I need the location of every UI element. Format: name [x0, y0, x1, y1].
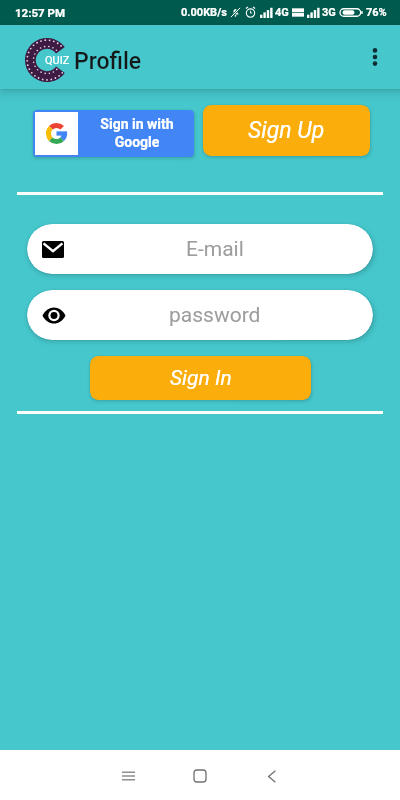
button[interactable]: Sign Up	[203, 105, 370, 156]
staticText: Sign In	[170, 366, 232, 391]
button[interactable]: More options	[355, 37, 395, 77]
staticText: Sign in with Google	[80, 116, 194, 151]
staticText: 3G	[322, 6, 336, 19]
button[interactable]: password	[27, 290, 373, 340]
staticText: E-mail	[186, 237, 244, 262]
staticText: Sign Up	[248, 117, 325, 144]
staticText: password	[169, 303, 261, 328]
staticText: QUIZ	[45, 54, 70, 67]
button[interactable]: Back	[252, 756, 292, 796]
staticText: Profile	[74, 48, 142, 75]
staticText: 12:57 PM	[15, 6, 65, 19]
button[interactable]: Recents	[108, 756, 148, 796]
staticText: 76%	[366, 6, 387, 19]
button[interactable]: Home	[180, 756, 220, 796]
button[interactable]: Sign in with Google	[33, 110, 194, 157]
staticText: 4G	[275, 6, 289, 19]
button[interactable]: E-mail	[27, 224, 373, 274]
button[interactable]: Sign In	[90, 356, 311, 400]
staticText: 0.00KB/s	[181, 6, 227, 19]
